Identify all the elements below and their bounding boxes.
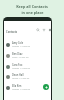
staticText: Cara Fox [12,63,23,66]
button[interactable]: Sort [42,28,46,32]
staticText: Mobile +1 202 55 [12,88,31,91]
staticText: Ella Kim [12,84,22,87]
button[interactable]: Ella Kim [4,82,51,93]
button[interactable]: Add contact [43,84,49,90]
button[interactable]: Dean Hall [4,71,51,82]
staticText: Amy Cole [12,41,24,44]
button[interactable]: Cara Fox [4,61,51,72]
button[interactable]: Ben Diaz [4,50,51,61]
staticText: Ben Diaz [12,52,23,55]
staticText: Work +1 202 55 [12,56,29,59]
staticText: Mobile +1 202 55 [12,45,31,48]
button[interactable]: Contacts [6,30,18,34]
staticText: Keep all Contacts [16,4,48,9]
staticText: Home +1 202 55 [12,77,30,80]
staticText: Dean Hall [12,73,24,76]
button[interactable]: Profile [48,28,52,32]
staticText: in one place [21,10,44,15]
button[interactable]: Search [36,28,40,32]
button[interactable]: Amy Cole [4,39,51,50]
staticText: Mobile +1 202 55 [12,67,31,70]
staticText: Contacts [6,30,18,34]
